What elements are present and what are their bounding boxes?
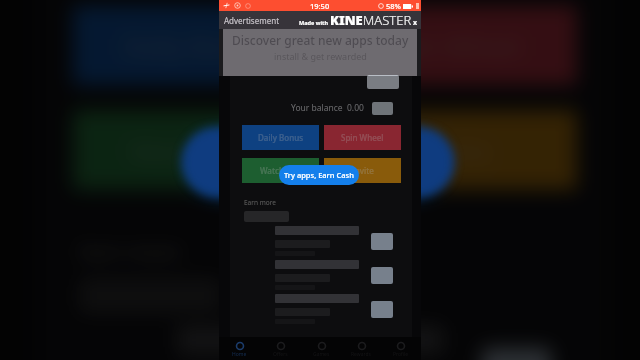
staticText: Your balance 0.00 [291,102,364,114]
button[interactable] [241,224,393,258]
button[interactable]: Invite [324,158,401,183]
button[interactable]: Profile [381,337,421,360]
staticText: Games [313,351,330,358]
button[interactable]: Invite [333,110,577,189]
staticText: 19:50 [310,1,330,11]
button[interactable]: Close ad [412,18,420,29]
button[interactable]: Spin Wheel [333,6,577,85]
button[interactable] [241,258,393,292]
staticText: Advertisement [224,15,280,26]
staticText: Rewards [351,351,372,358]
button[interactable]: Try apps, Earn Cash [279,165,359,185]
button[interactable]: Offers [260,337,301,360]
staticText: Spin Wheel [386,28,523,63]
staticText: Daily Bonus [124,28,269,63]
button[interactable] [241,292,393,326]
staticText: Earn more [244,198,276,207]
button[interactable] [70,319,551,360]
staticText: MASTER [363,11,412,29]
button[interactable]: Daily Bonus [242,125,319,150]
button[interactable]: Rewards [341,337,381,360]
staticText: x [413,18,418,28]
staticText: Invite [352,165,374,176]
button[interactable]: Daily Bonus [73,6,317,85]
staticText: Discover great new apps today [232,32,409,48]
button[interactable] [372,102,393,115]
staticText: KINE [330,11,363,29]
staticText: Spin Wheel [341,132,384,143]
staticText: Try apps, Earn Cash [206,148,428,180]
staticText: Watch Ads [130,132,260,167]
button[interactable]: Spin Wheel [324,125,401,150]
staticText: Home [232,351,247,358]
button[interactable]: Games [301,337,341,360]
staticText: Daily Bonus [258,132,304,143]
staticText: Try apps, Earn Cash [284,170,354,180]
staticText: install & get rewarded [274,50,367,62]
staticText: 58% [386,1,401,11]
button[interactable]: Watch Ads [242,158,319,183]
staticText: Offers [273,351,288,358]
staticText: Invite [421,132,491,167]
button[interactable] [367,75,399,89]
staticText: Made with [299,19,328,26]
button[interactable]: Home [219,337,260,360]
button[interactable]: Discover great new apps today [223,29,417,76]
button[interactable]: Watch Ads [73,110,317,189]
button[interactable]: Try apps, Earn Cash [190,132,444,196]
staticText: Watch Ads [260,165,301,176]
